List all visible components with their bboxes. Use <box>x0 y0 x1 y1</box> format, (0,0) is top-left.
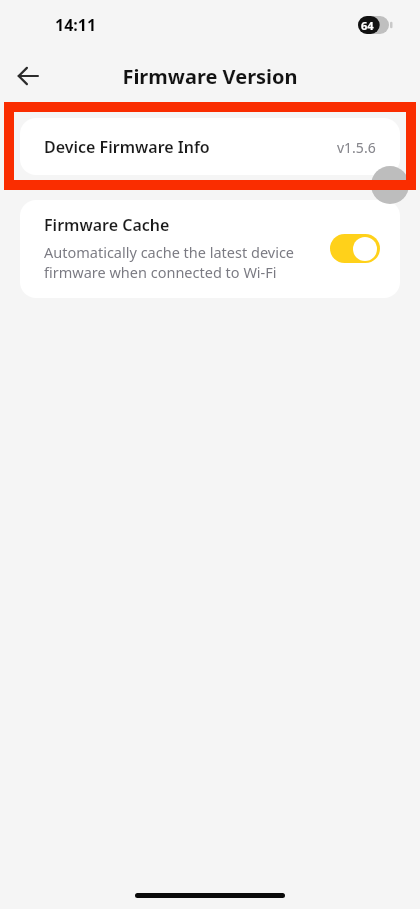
staticText: Automatically cache the latest device fi… <box>44 242 318 282</box>
staticText: Firmware Cache <box>44 214 170 236</box>
button[interactable]: Firmware cache toggle <box>330 234 380 263</box>
staticText: Firmware Version <box>122 63 298 90</box>
staticText: v1.5.6 <box>337 138 376 157</box>
button[interactable]: Handle <box>371 166 409 204</box>
button[interactable]: Firmware Cache <box>20 200 400 298</box>
staticText: Device Firmware Info <box>44 136 210 158</box>
staticText: 64 <box>361 18 374 33</box>
staticText: 14:11 <box>55 14 97 36</box>
button[interactable]: Back <box>6 54 50 98</box>
button[interactable]: Device Firmware Info <box>20 118 400 175</box>
